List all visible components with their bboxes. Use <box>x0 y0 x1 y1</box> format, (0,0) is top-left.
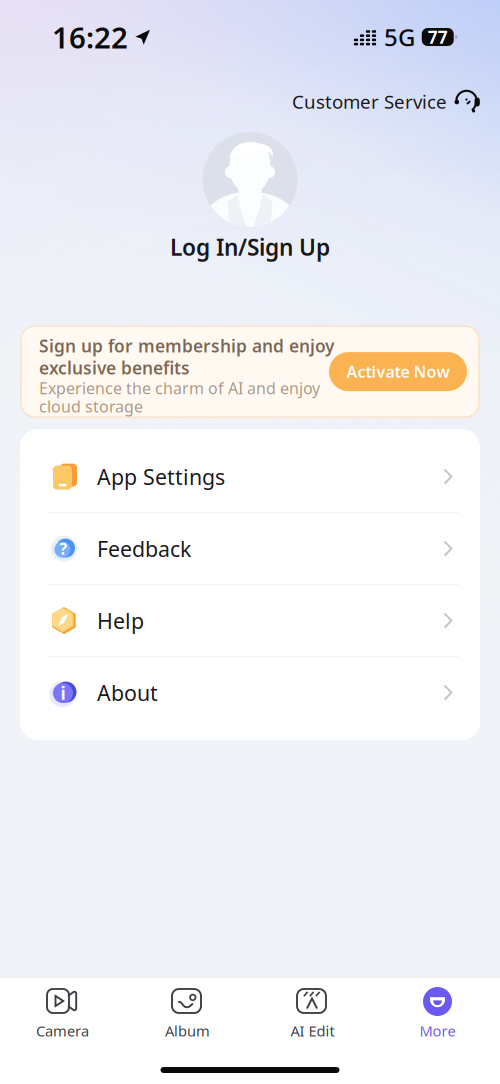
button[interactable]: Customer Service <box>292 87 482 116</box>
staticText: About <box>97 678 158 707</box>
button[interactable]: App Settings <box>20 441 480 512</box>
staticText: App Settings <box>97 462 225 491</box>
staticText: 5G <box>384 21 415 53</box>
button[interactable]: AI Edit <box>250 989 375 1040</box>
staticText: AI Edit <box>290 1021 334 1040</box>
button[interactable]: i <box>20 657 480 728</box>
staticText: Activate Now <box>346 361 449 382</box>
staticText: i <box>60 682 65 705</box>
staticText: Camera <box>36 1021 89 1040</box>
staticText: Log In/Sign Up <box>170 232 330 262</box>
staticText: 77 <box>428 25 448 48</box>
button[interactable]: Camera <box>0 989 125 1040</box>
button[interactable]: More <box>375 989 500 1040</box>
staticText: Help <box>97 606 144 635</box>
staticText: Feedback <box>97 534 191 563</box>
staticText: Experience the charm of AI and enjoy clo… <box>39 377 320 417</box>
staticText: 16:22 <box>52 17 128 56</box>
button[interactable]: Help <box>20 585 480 656</box>
button[interactable]: ? <box>20 513 480 584</box>
button[interactable]: Log In/Sign Up <box>170 232 330 262</box>
staticText: Album <box>165 1021 210 1040</box>
button[interactable]: Album <box>125 989 250 1040</box>
staticText: ? <box>59 538 67 559</box>
staticText: Sign up for membership and enjoy exclusi… <box>39 334 334 379</box>
staticText: More <box>419 1021 455 1040</box>
button[interactable]: Activate Now <box>329 352 467 391</box>
staticText: Customer Service <box>292 89 447 114</box>
